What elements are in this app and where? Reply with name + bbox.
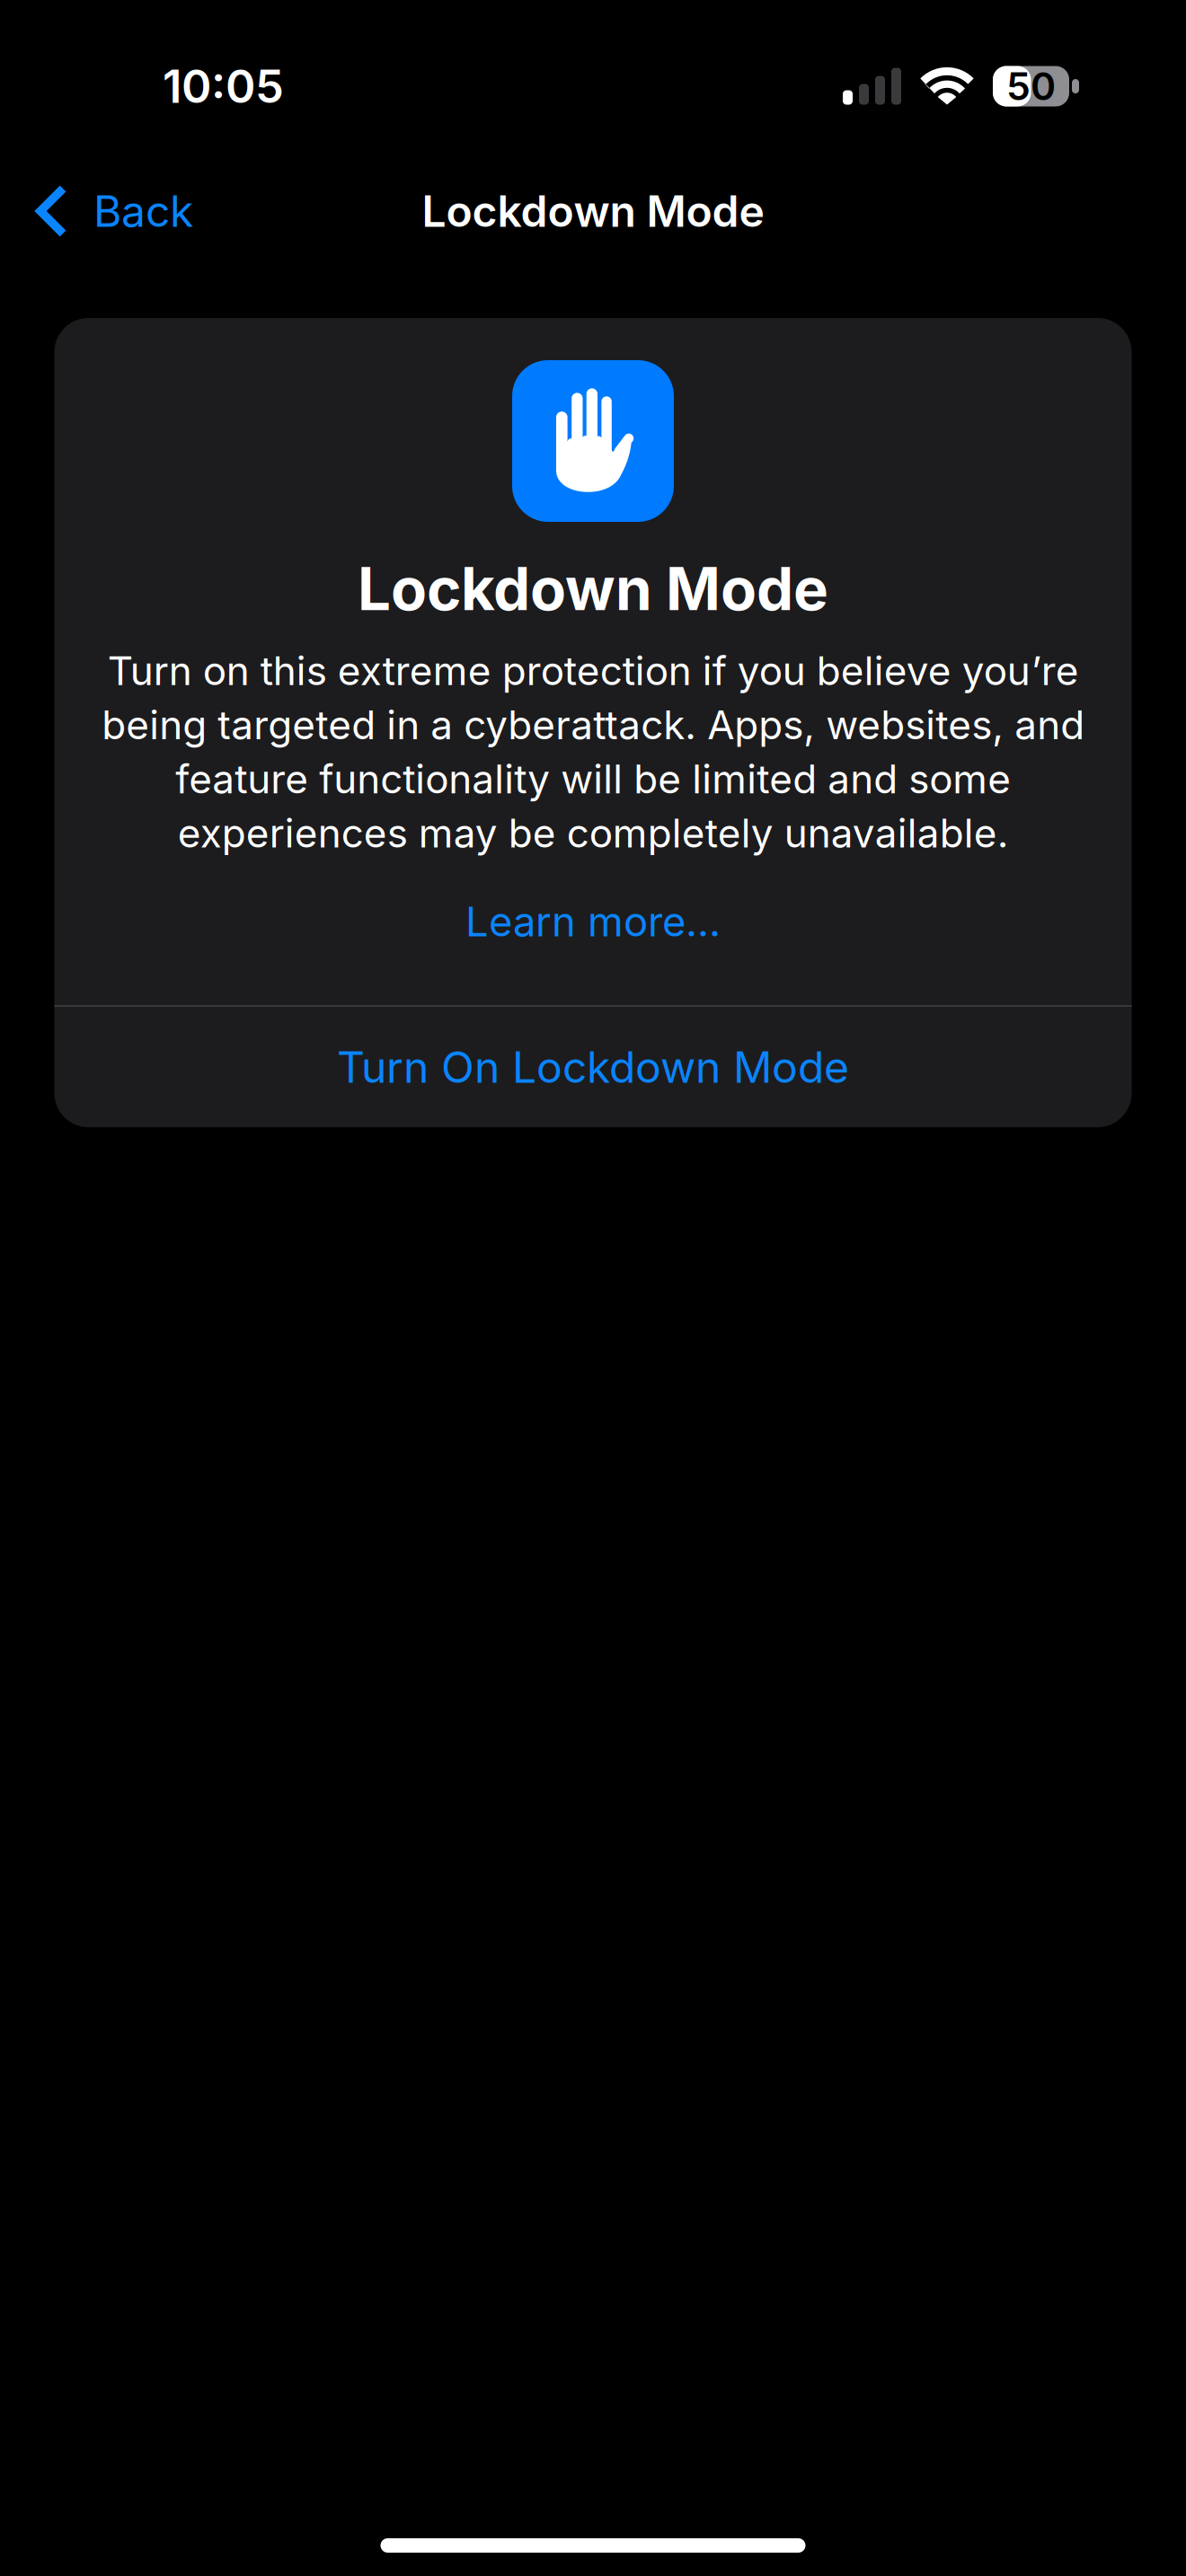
- staticText: Lockdown Mode: [422, 185, 764, 237]
- staticText: 50: [1006, 63, 1056, 109]
- button[interactable]: Learn more...: [54, 895, 1132, 948]
- staticText: 10:05: [163, 59, 284, 114]
- staticText: Turn On Lockdown Mode: [337, 1041, 849, 1093]
- button[interactable]: Turn On Lockdown Mode: [54, 1007, 1132, 1127]
- staticText: Back: [93, 185, 193, 237]
- staticText: Lockdown Mode: [358, 553, 828, 624]
- button[interactable]: Back: [0, 152, 218, 270]
- staticText: Turn on this extreme protection if you b…: [102, 647, 1084, 857]
- staticText: Learn more...: [465, 897, 721, 946]
